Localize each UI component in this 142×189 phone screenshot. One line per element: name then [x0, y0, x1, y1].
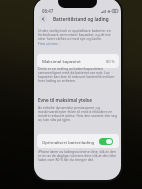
- button[interactable]: Maksimal kapasitet: [37, 54, 119, 68]
- staticText: Under vanlig bruk er oppladbare batterie…: [38, 28, 118, 41]
- button[interactable]: Back: [39, 15, 47, 23]
- staticText: Optimalisert batterilading: [42, 139, 95, 145]
- staticText: 06:47: [42, 8, 54, 14]
- staticText: Batteritilstand og lading: [53, 16, 109, 22]
- staticText: Dette er en måling av batterikapasiteten…: [38, 66, 118, 83]
- staticText: 80 %: [106, 59, 115, 64]
- staticText: Evne til maksimal ytelse: [38, 97, 92, 103]
- staticText: iPhone lærer av ladingsrutinene dine, sl…: [38, 149, 118, 162]
- button[interactable]: Optimalisert batterilading: [37, 134, 119, 148]
- staticText: Finn ut mer...: [38, 41, 60, 46]
- button[interactable]: Optimalisert batterilading: [99, 138, 113, 145]
- staticText: Maksimal kapasitet: [42, 58, 81, 64]
- staticText: Av enkelte dynamiske prestasjoner, og ma…: [38, 105, 118, 122]
